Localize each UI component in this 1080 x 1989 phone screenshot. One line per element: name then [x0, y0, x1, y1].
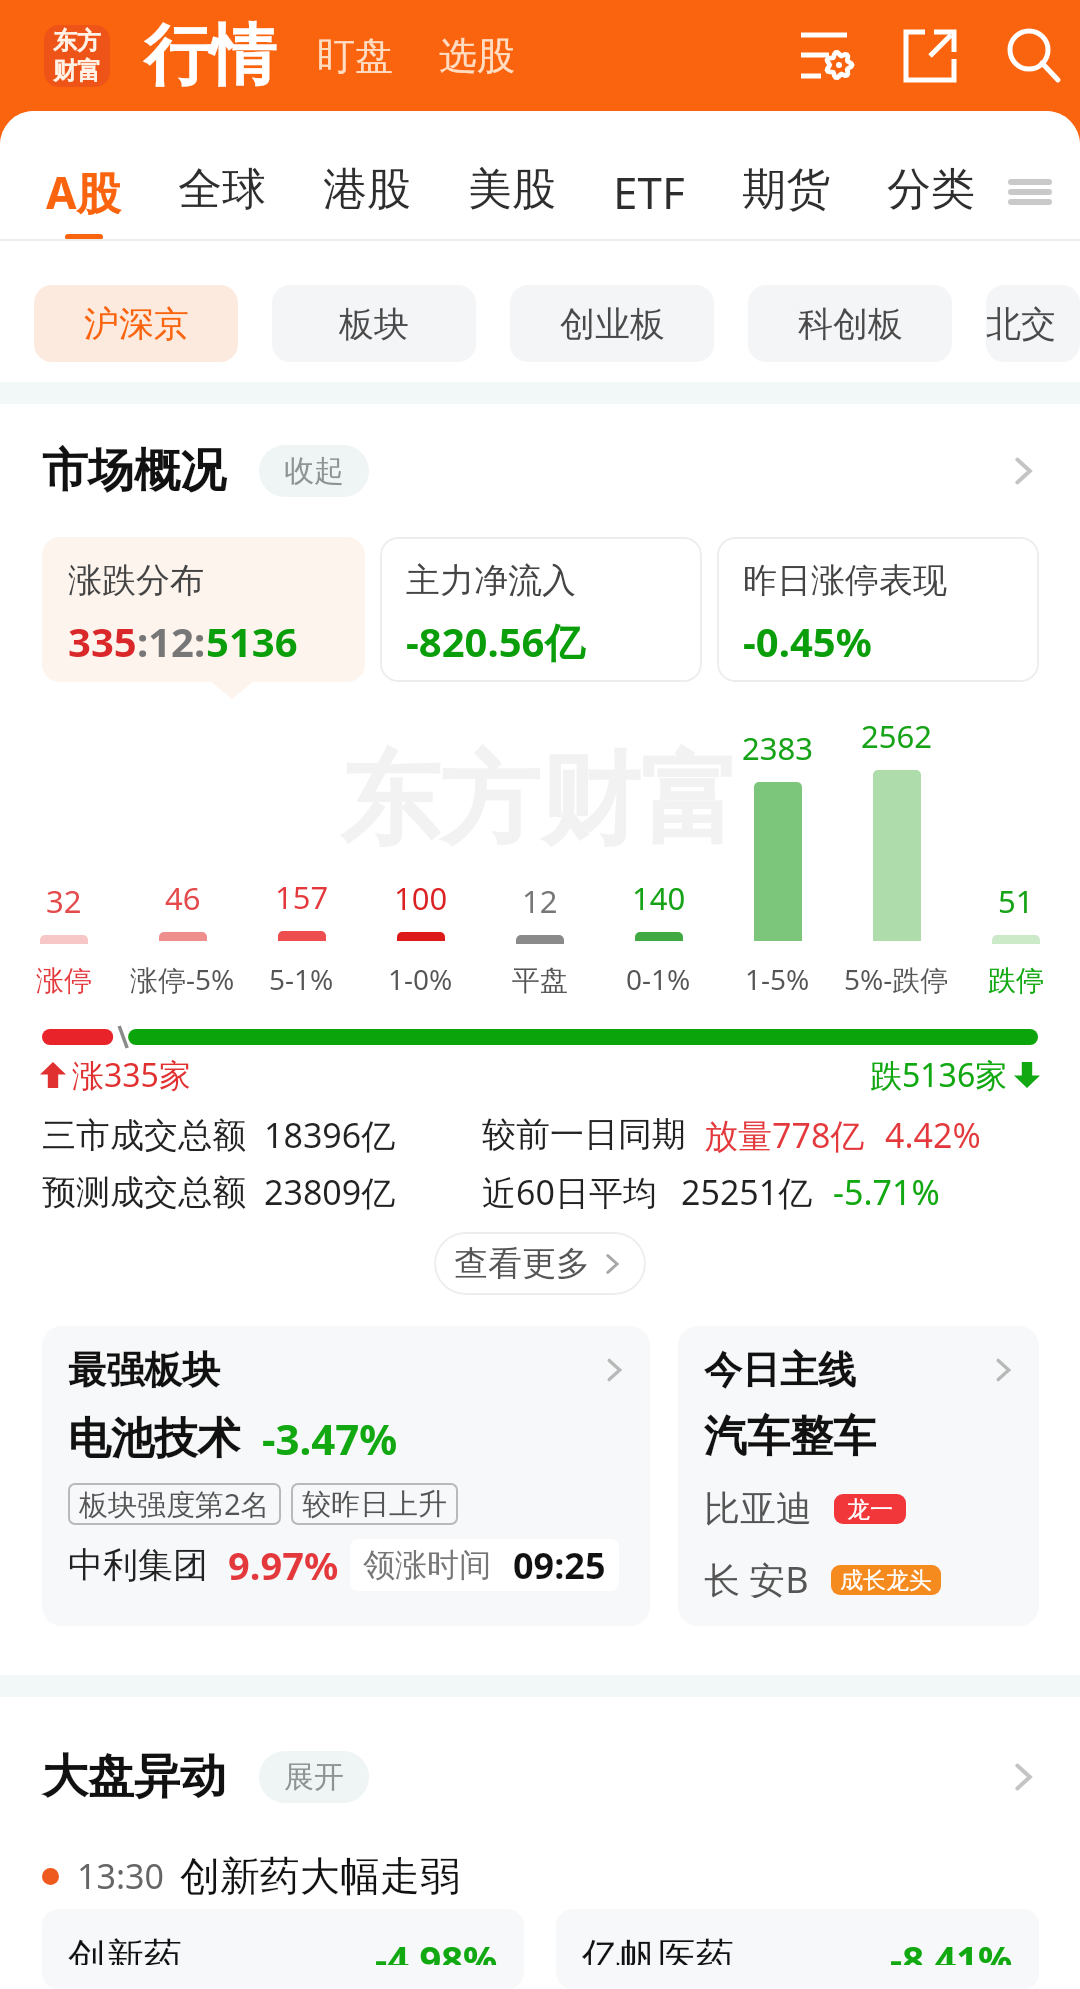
- staticText: 平盘: [512, 963, 568, 998]
- staticText: 放量778亿: [704, 1112, 865, 1158]
- staticText: 全球: [178, 162, 266, 217]
- button[interactable]: 展开: [259, 1751, 369, 1803]
- button[interactable]: 亿帆医药: [556, 1909, 1039, 1989]
- button[interactable]: 板块: [272, 285, 476, 362]
- staticText: 汽车整车: [704, 1410, 876, 1464]
- staticText: 期货: [742, 162, 830, 217]
- staticText: 1-0%: [388, 960, 453, 998]
- button[interactable]: 创新药: [42, 1909, 524, 1989]
- staticText: 25251亿: [681, 1169, 813, 1215]
- button[interactable]: Search: [996, 13, 1072, 99]
- staticText: 涨停: [36, 963, 92, 998]
- button[interactable]: More categories: [1002, 162, 1058, 222]
- button[interactable]: 13:30: [0, 1843, 1080, 1909]
- staticText: 12: [522, 880, 558, 922]
- staticText: 0-1%: [626, 960, 691, 998]
- staticText: 13:30: [77, 1853, 164, 1899]
- button[interactable]: 沪深京: [34, 285, 238, 362]
- staticText: -5.71%: [833, 1169, 940, 1215]
- staticText: 涨335家: [72, 1053, 191, 1097]
- staticText: 跌5136家: [870, 1053, 1008, 1097]
- button[interactable]: ETF: [599, 162, 699, 241]
- staticText: 预测成交总额: [42, 1171, 246, 1214]
- button[interactable]: 涨跌分布: [42, 537, 365, 682]
- button[interactable]: 港股: [309, 162, 425, 241]
- staticText: 盯盘: [317, 32, 393, 80]
- staticText: 157: [275, 876, 329, 918]
- staticText: 创新药大幅走弱: [180, 1851, 460, 1901]
- button[interactable]: 期货: [728, 162, 844, 241]
- staticText: 最强板块: [68, 1346, 220, 1394]
- staticText: 涨停-5%: [130, 960, 235, 998]
- button[interactable]: 选股: [433, 18, 521, 94]
- staticText: 收起: [284, 452, 344, 490]
- button[interactable]: 分类: [873, 162, 989, 241]
- button[interactable]: 收起: [259, 445, 369, 497]
- staticText: 18396亿: [264, 1112, 396, 1158]
- staticText: 较前一日同期: [482, 1113, 686, 1156]
- staticText: 东方: [53, 26, 101, 56]
- staticText: 财富: [53, 56, 101, 86]
- button[interactable]: 查看更多: [434, 1232, 646, 1295]
- staticText: 335: [68, 614, 137, 668]
- button[interactable]: 东方: [44, 25, 110, 87]
- staticText: 中利集团: [68, 1543, 208, 1587]
- staticText: 9.97%: [228, 1539, 339, 1591]
- staticText: 2383: [742, 727, 813, 769]
- staticText: 亿帆医药: [582, 1933, 734, 1965]
- staticText: 23809亿: [264, 1169, 396, 1215]
- button[interactable]: 盯盘: [311, 18, 399, 94]
- button[interactable]: 科创板: [748, 285, 952, 362]
- staticText: 创新药: [68, 1933, 182, 1965]
- button[interactable]: A股: [32, 162, 135, 241]
- button[interactable]: 美股: [454, 162, 570, 241]
- button[interactable]: 主力净流入: [380, 537, 702, 682]
- staticText: 长 安B: [704, 1555, 809, 1604]
- staticText: 昨日涨停表现: [743, 559, 947, 602]
- staticText: 51: [998, 880, 1034, 922]
- staticText: 美股: [468, 162, 556, 217]
- button[interactable]: 市场概况: [0, 404, 1080, 537]
- staticText: 09:25: [513, 1541, 606, 1590]
- button[interactable]: Share: [892, 13, 968, 99]
- button[interactable]: 昨日涨停表现: [717, 537, 1039, 682]
- staticText: -4.98%: [375, 1933, 498, 1965]
- staticText: 沪深京: [84, 302, 189, 346]
- staticText: 板块强度第2名: [79, 1484, 270, 1524]
- staticText: 100: [394, 877, 448, 919]
- button[interactable]: 北交所: [986, 285, 1080, 362]
- staticText: ETF: [613, 162, 685, 222]
- staticText: 分类: [887, 162, 975, 217]
- staticText: 领涨时间: [363, 1545, 491, 1585]
- button[interactable]: 全球: [164, 162, 280, 241]
- staticText: 46: [165, 877, 201, 919]
- button[interactable]: 最强板块: [42, 1326, 650, 1626]
- staticText: 成长龙头: [840, 1566, 932, 1595]
- button[interactable]: Settings: [788, 13, 864, 99]
- staticText: 展开: [284, 1758, 344, 1796]
- button[interactable]: 今日主线: [678, 1326, 1039, 1626]
- staticText: 北交所: [986, 302, 1080, 346]
- staticText: 科创板: [798, 302, 903, 346]
- staticText: -3.47%: [262, 1410, 398, 1467]
- staticText: 大盘异动: [42, 1748, 226, 1806]
- staticText: -8.41%: [890, 1933, 1013, 1965]
- staticText: 板块: [339, 302, 409, 346]
- button[interactable]: 大盘异动: [0, 1710, 1080, 1843]
- staticText: -0.45%: [743, 614, 872, 668]
- staticText: 电池技术: [68, 1412, 240, 1466]
- staticText: -820.56亿: [406, 614, 585, 669]
- staticText: 涨跌分布: [68, 559, 204, 602]
- staticText: 140: [632, 877, 686, 919]
- staticText: 32: [46, 880, 82, 922]
- button[interactable]: 创业板: [510, 285, 714, 362]
- staticText: 市场概况: [42, 442, 226, 500]
- staticText: 5%-跌停: [844, 960, 949, 998]
- staticText: 5-1%: [269, 960, 334, 998]
- staticText: 行情: [144, 14, 276, 97]
- staticText: 比亚迪: [704, 1486, 812, 1531]
- staticText: 2562: [861, 715, 932, 757]
- staticText: :12:: [137, 614, 206, 668]
- staticText: A股: [46, 162, 121, 222]
- staticText: 龙一: [847, 1495, 893, 1524]
